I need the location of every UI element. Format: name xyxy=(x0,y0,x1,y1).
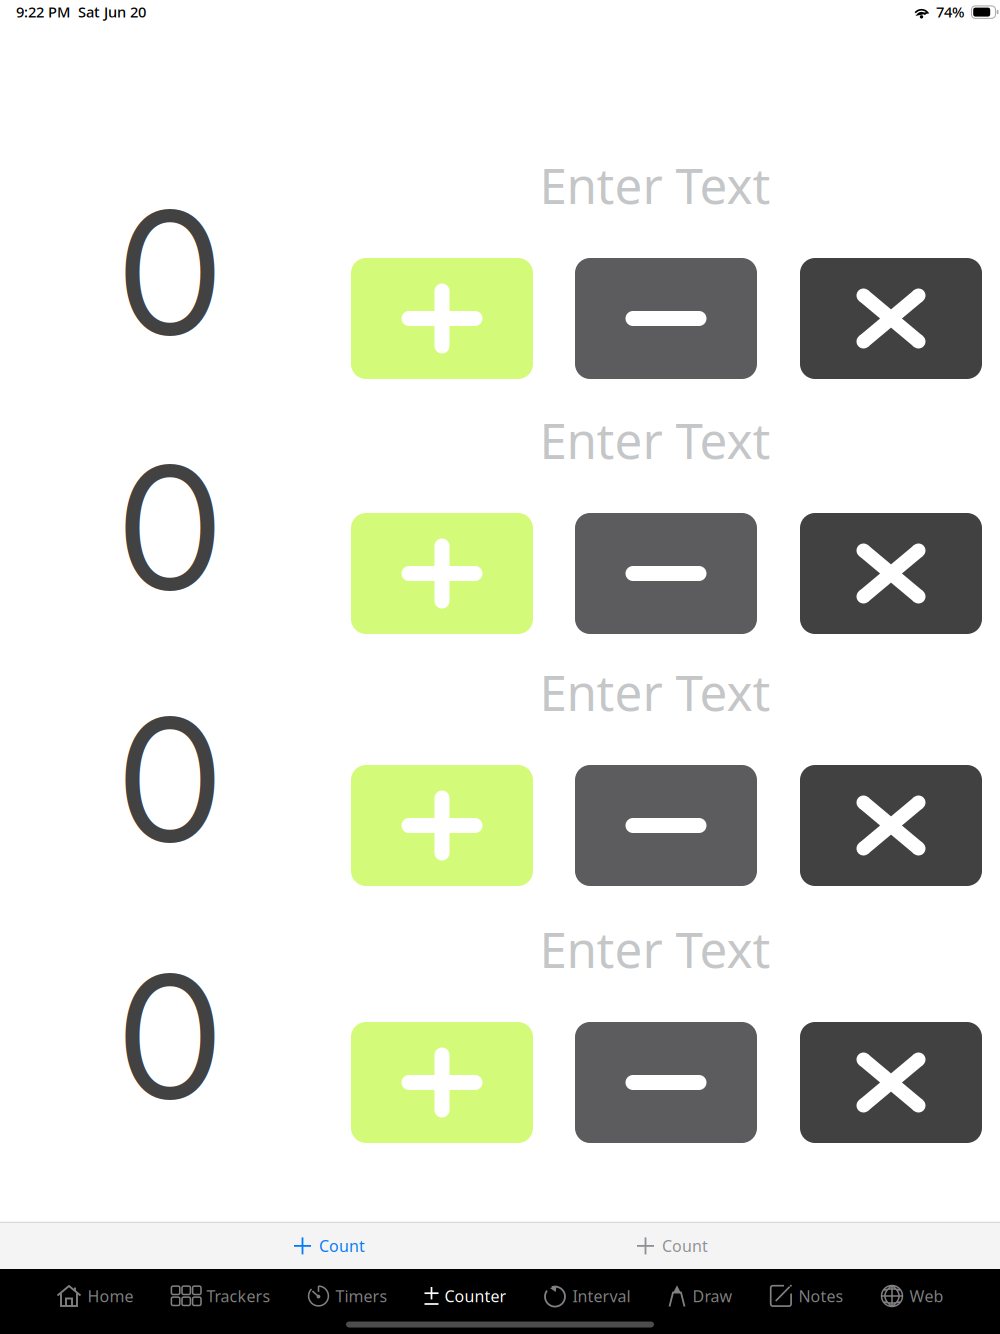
staticText: 0 xyxy=(118,425,222,630)
button[interactable]: Counter xyxy=(424,1273,506,1319)
staticText: Draw xyxy=(692,1285,732,1307)
button[interactable]: Notes xyxy=(769,1273,843,1319)
staticText: Timers xyxy=(335,1285,387,1307)
button[interactable]: Increment xyxy=(351,1022,533,1143)
button[interactable]: Interval xyxy=(543,1273,630,1319)
button[interactable]: Home xyxy=(56,1273,133,1319)
button[interactable]: Decrement xyxy=(575,258,757,379)
staticText: Count xyxy=(662,1235,708,1256)
button[interactable]: Increment xyxy=(351,513,533,634)
button[interactable]: Reset xyxy=(800,513,982,634)
staticText: 0 xyxy=(118,677,222,882)
button[interactable]: Draw xyxy=(667,1273,732,1319)
button[interactable]: Count xyxy=(294,1223,365,1269)
button[interactable]: Reset xyxy=(800,765,982,886)
staticText: 9:22 PM xyxy=(16,2,70,21)
staticText: Web xyxy=(909,1285,943,1307)
staticText: Enter Text xyxy=(539,659,770,724)
button[interactable]: Timers xyxy=(307,1273,387,1319)
staticText: Count xyxy=(319,1235,365,1256)
button[interactable]: Web xyxy=(880,1273,943,1319)
button[interactable]: Reset xyxy=(800,258,982,379)
staticText: Enter Text xyxy=(539,152,770,217)
button[interactable]: Reset xyxy=(800,1022,982,1143)
staticText: Counter xyxy=(444,1285,506,1307)
staticText: Interval xyxy=(572,1285,630,1307)
button[interactable]: Increment xyxy=(351,765,533,886)
staticText: Notes xyxy=(798,1285,843,1307)
button[interactable]: Trackers xyxy=(170,1273,270,1319)
staticText: Trackers xyxy=(206,1285,270,1307)
button[interactable]: Increment xyxy=(351,258,533,379)
button[interactable]: Decrement xyxy=(575,1022,757,1143)
button[interactable]: Count xyxy=(637,1223,708,1269)
staticText: Sat Jun 20 xyxy=(78,2,146,21)
staticText: 0 xyxy=(118,934,222,1139)
staticText: Enter Text xyxy=(539,916,770,981)
staticText: Home xyxy=(87,1285,133,1307)
staticText: Enter Text xyxy=(539,407,770,472)
staticText: 74% xyxy=(936,2,964,21)
staticText: 0 xyxy=(118,170,222,375)
button[interactable]: Decrement xyxy=(575,765,757,886)
button[interactable]: Decrement xyxy=(575,513,757,634)
